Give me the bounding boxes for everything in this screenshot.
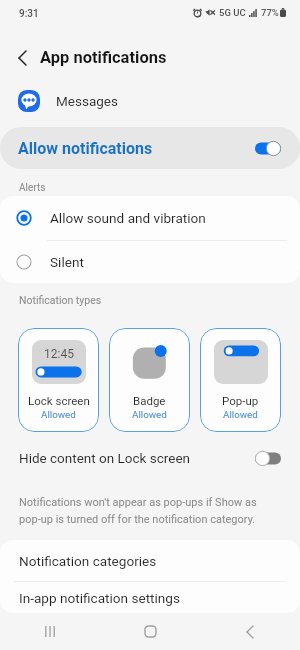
- staticText: Hide content on Lock screen: [19, 450, 191, 466]
- button[interactable]: Home: [100, 613, 200, 650]
- staticText: App notifications: [40, 48, 167, 67]
- button[interactable]: Allow sound and vibration: [0, 196, 300, 240]
- button[interactable]: Badge: [109, 328, 190, 432]
- staticText: Lock screen: [28, 394, 90, 407]
- staticText: Allowed: [132, 409, 167, 420]
- staticText: Allow sound and vibration: [50, 210, 206, 226]
- staticText: 5G UC: [219, 7, 246, 18]
- staticText: Notification types: [19, 294, 102, 306]
- staticText: 77%: [261, 7, 279, 18]
- button[interactable]: Navigate up: [7, 42, 38, 73]
- staticText: Allowed: [223, 409, 258, 420]
- button[interactable]: Pop-up: [200, 328, 281, 432]
- staticText: Notifications won't appear as pop-ups if…: [19, 496, 266, 525]
- staticText: 12:45: [44, 347, 74, 361]
- button[interactable]: 12:45: [18, 328, 99, 432]
- staticText: 9:31: [19, 8, 39, 20]
- staticText: In-app notification settings: [19, 590, 181, 606]
- button[interactable]: Back: [200, 613, 300, 650]
- button[interactable]: In-app notification settings: [0, 582, 300, 613]
- staticText: Badge: [133, 394, 166, 407]
- button[interactable]: Messages: [0, 81, 300, 120]
- button[interactable]: Recent apps: [0, 613, 100, 650]
- button[interactable]: Notification categories: [0, 540, 300, 581]
- button[interactable]: Hide content on Lock screen: [0, 440, 300, 476]
- staticText: Pop-up: [222, 394, 259, 407]
- staticText: Messages: [56, 93, 118, 109]
- button[interactable]: Allow notifications: [0, 127, 300, 169]
- staticText: Allowed: [41, 409, 76, 420]
- button[interactable]: Silent: [0, 241, 300, 283]
- staticText: Notification categories: [19, 553, 157, 569]
- staticText: Alerts: [19, 182, 46, 194]
- staticText: Allow notifications: [18, 139, 153, 158]
- staticText: Silent: [50, 254, 84, 270]
